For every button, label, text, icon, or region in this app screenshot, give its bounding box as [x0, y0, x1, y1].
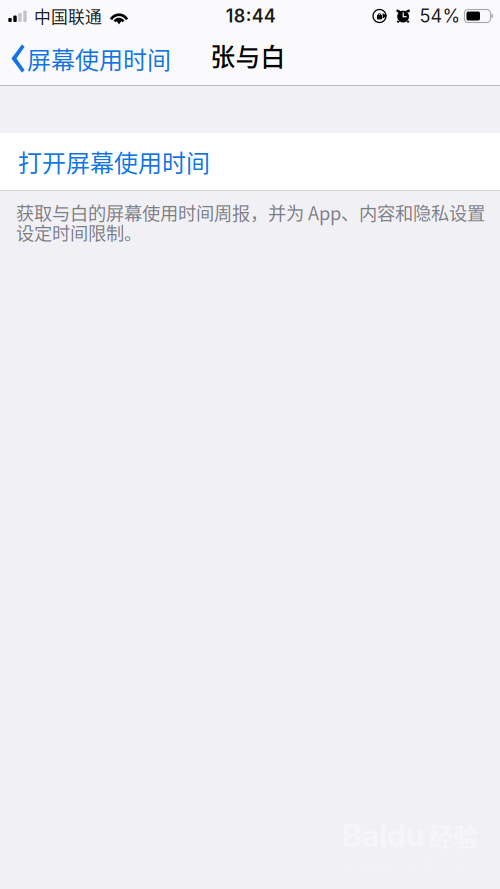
staticText: 打开屏幕使用时间 — [18, 144, 210, 179]
staticText: 54% — [419, 5, 460, 27]
button[interactable]: 屏幕使用时间 — [0, 35, 171, 82]
staticText: 获取与白的屏幕使用时间周报，并为 App、内容和隐私设置设定时间限制。 — [16, 199, 485, 245]
staticText: 18:44 — [226, 5, 276, 27]
staticText: 屏幕使用时间 — [27, 41, 171, 76]
staticText: 张与白 — [210, 38, 285, 73]
button[interactable]: 打开屏幕使用时间 — [0, 133, 500, 190]
staticText: 中国联通 — [34, 4, 102, 28]
